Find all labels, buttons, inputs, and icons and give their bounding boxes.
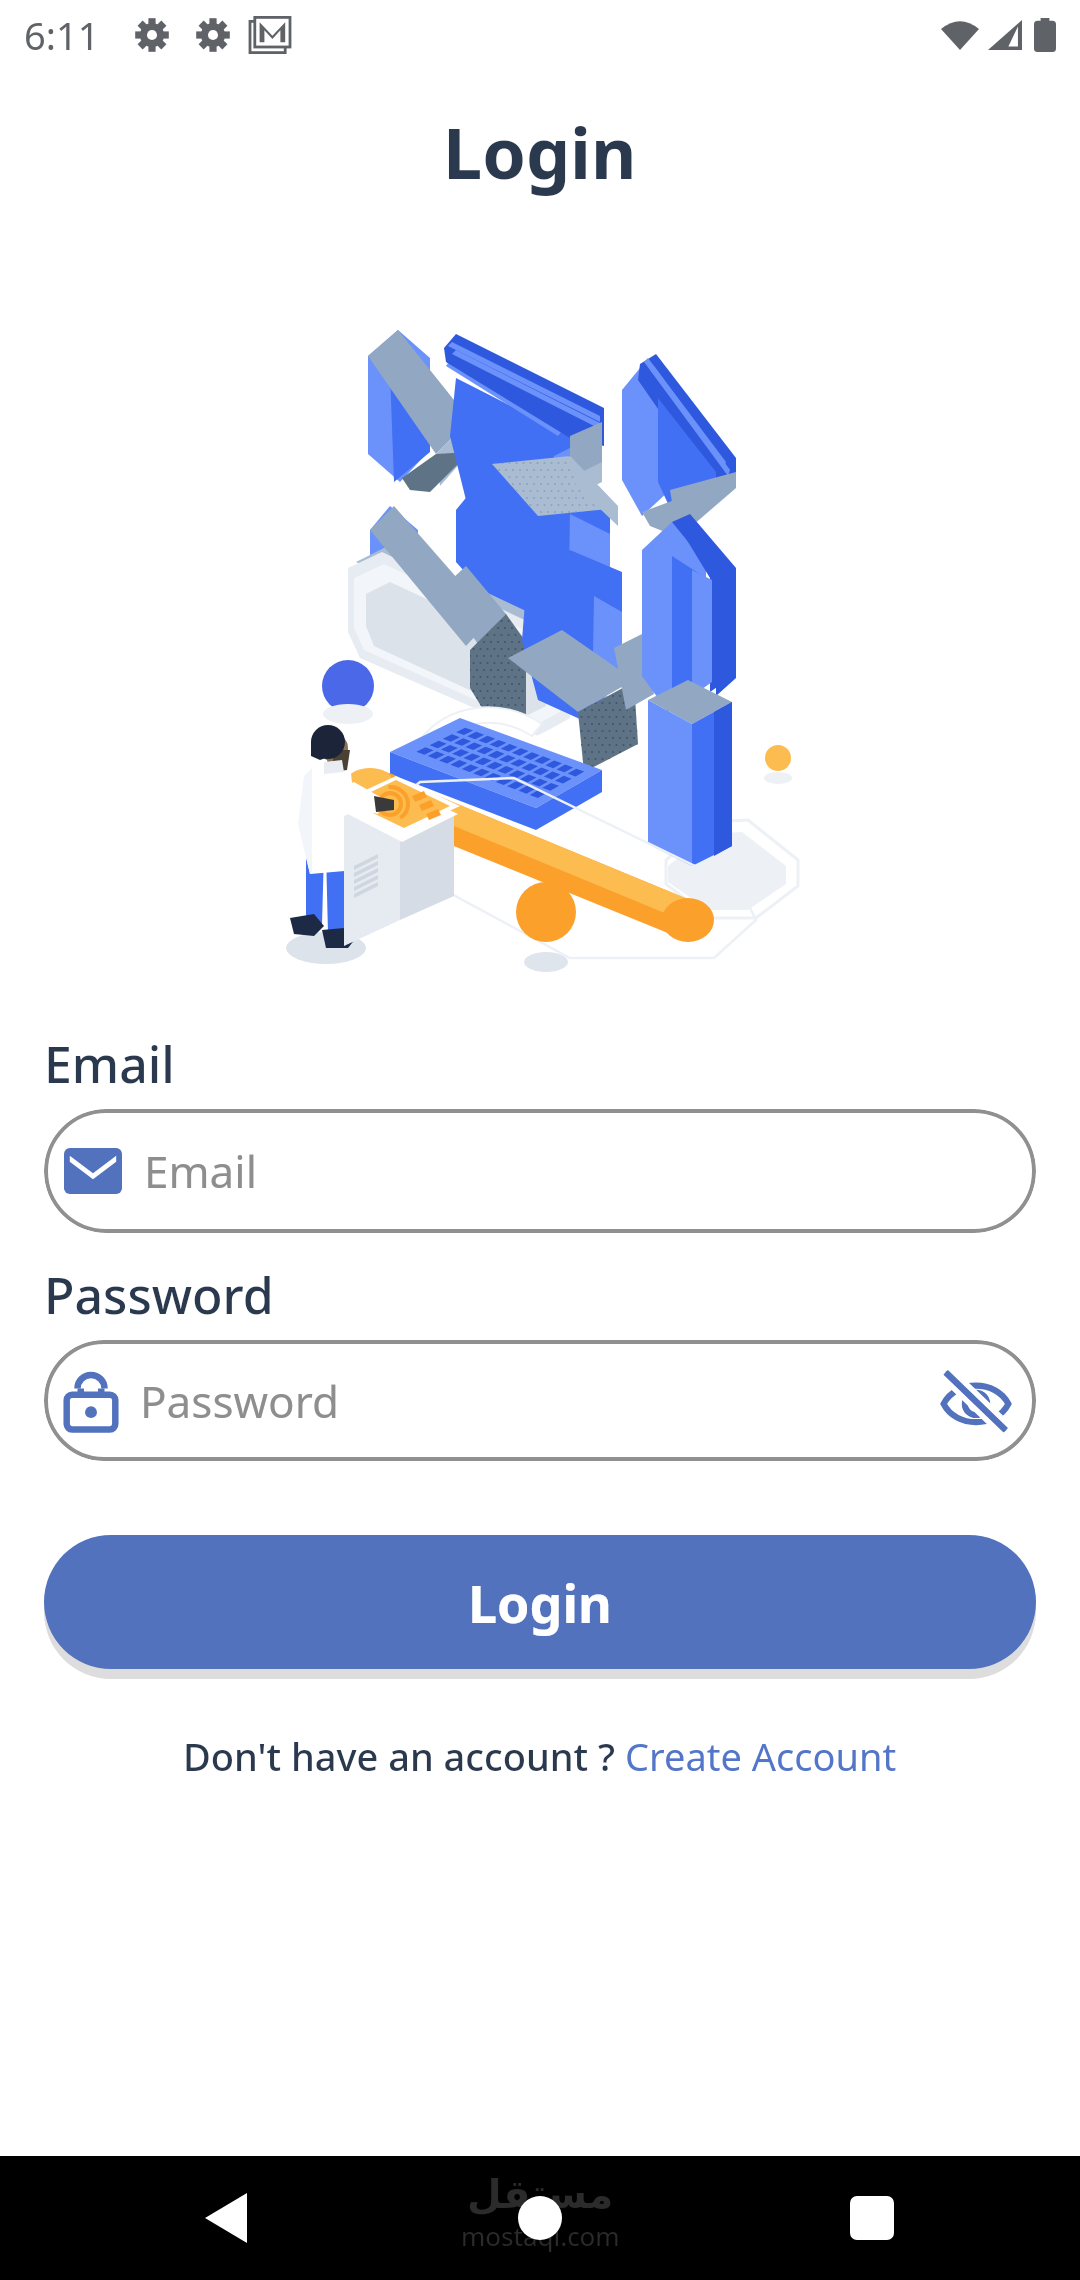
button[interactable]: Password (44, 1340, 1036, 1461)
staticText: mostaql.com (461, 2218, 620, 2253)
button[interactable]: Email (44, 1109, 1036, 1233)
button[interactable]: Create Account (625, 1730, 897, 1782)
staticText: Password (44, 1261, 274, 1329)
staticText: Email (144, 1141, 1018, 1201)
button[interactable]: Show password (934, 1359, 1018, 1443)
staticText: Login (468, 1567, 612, 1638)
button[interactable]: Back (186, 2178, 266, 2258)
button[interactable]: Home (500, 2178, 580, 2258)
staticText: Password (140, 1371, 934, 1431)
staticText: مستقل (467, 2171, 614, 2218)
staticText: Create Account (625, 1730, 897, 1782)
button[interactable]: Recents (832, 2178, 912, 2258)
staticText: Login (443, 104, 637, 199)
staticText: 6:11 (24, 9, 100, 61)
staticText: Don't have an account ? (183, 1730, 625, 1782)
staticText: Email (44, 1030, 175, 1098)
button[interactable]: Login (44, 1535, 1036, 1669)
